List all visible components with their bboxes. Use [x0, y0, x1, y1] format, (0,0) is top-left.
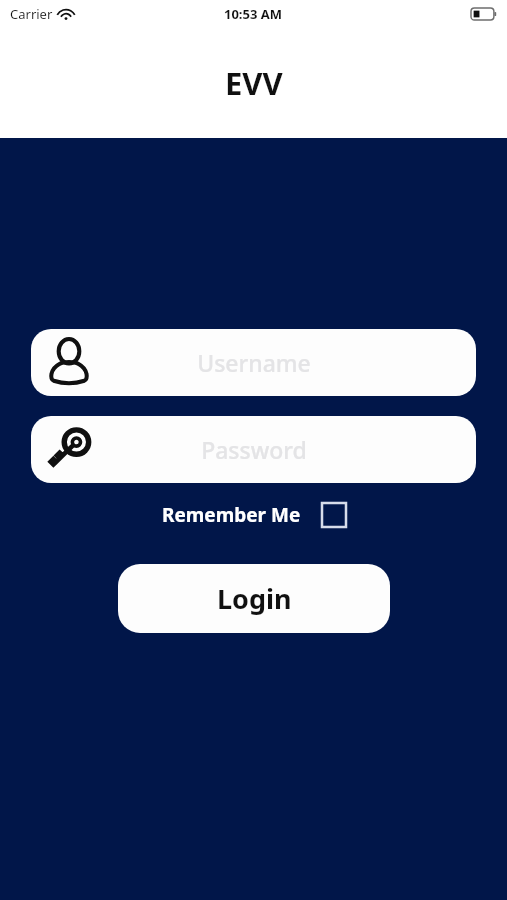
- staticText: Password: [201, 434, 307, 465]
- button[interactable]: Username: [31, 329, 476, 396]
- button[interactable]: Remember Me: [158, 498, 350, 532]
- staticText: Login: [217, 580, 292, 617]
- staticText: Remember Me: [162, 502, 301, 528]
- button[interactable]: Login: [118, 564, 390, 633]
- staticText: EVV: [225, 62, 283, 104]
- button[interactable]: Password: [31, 416, 476, 483]
- staticText: Username: [197, 347, 311, 378]
- staticText: 10:53 AM: [224, 5, 283, 23]
- staticText: Carrier: [10, 5, 53, 23]
